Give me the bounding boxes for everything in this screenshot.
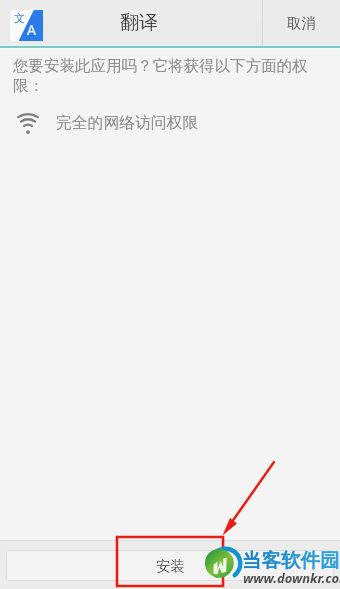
other: Google Translate app icon [10,10,43,41]
staticText: www.downkr.com [243,569,340,587]
button[interactable]: 取消 [263,0,340,46]
other: Network access permission [17,113,39,134]
staticText: A [27,20,36,39]
staticText: 取消 [287,14,316,32]
staticText: 安装 [156,557,185,575]
staticText: 翻译 [120,11,158,35]
staticText: 文 [14,11,25,25]
staticText: 完全的网络访问权限 [56,113,199,133]
staticText: 当客软件园 [242,548,340,573]
button[interactable]: Network access permission [0,103,340,139]
staticText: 您要安装此应用吗？它将获得以下方面的权 限： [13,56,334,96]
button[interactable]: 安装 [6,550,334,581]
